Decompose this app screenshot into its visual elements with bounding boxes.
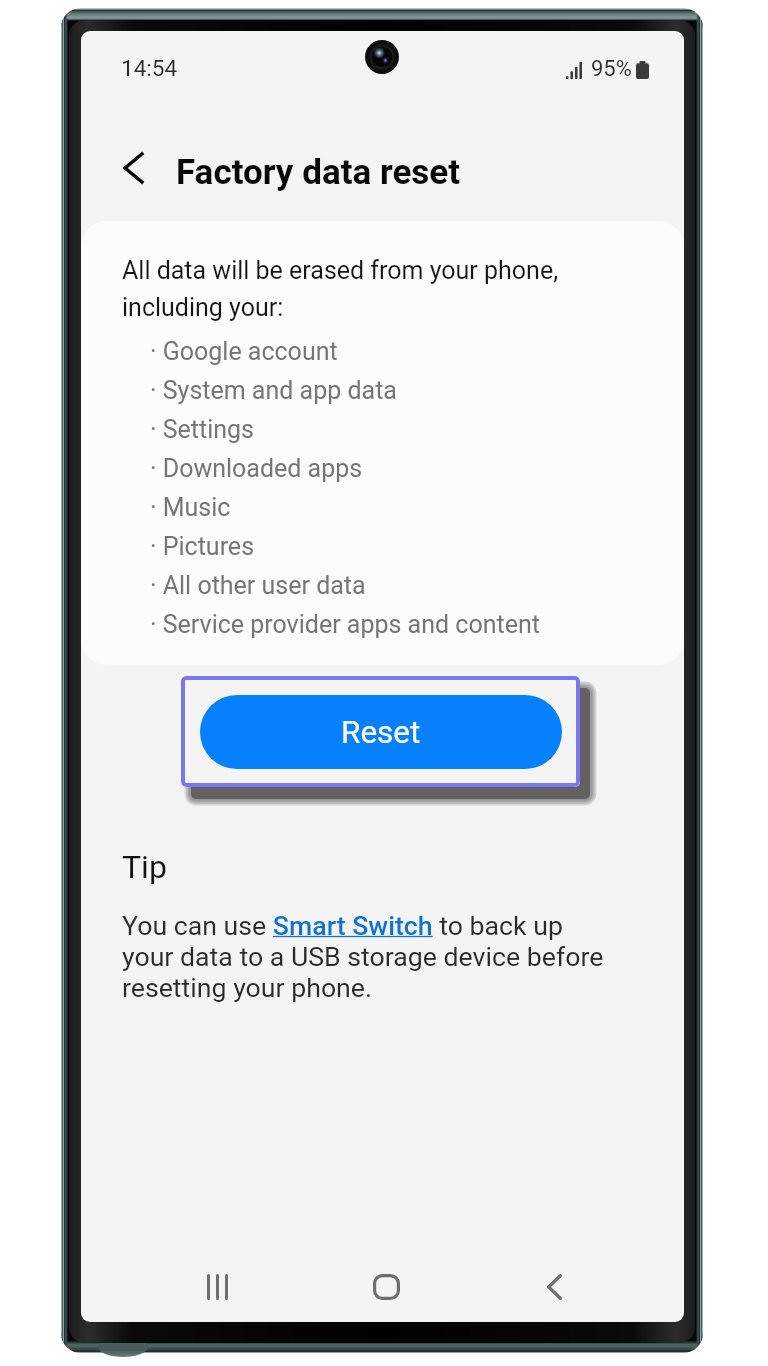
staticText: All data will be erased from your phone,… xyxy=(122,256,559,322)
staticText: · Service provider apps and content xyxy=(150,610,540,639)
button[interactable]: Reset xyxy=(200,695,562,769)
button[interactable]: Home xyxy=(302,1252,470,1322)
staticText: · All other user data xyxy=(150,571,366,600)
staticText: Factory data reset xyxy=(176,152,461,193)
staticText: · Downloaded apps xyxy=(150,454,363,483)
button[interactable]: Back xyxy=(470,1252,638,1322)
staticText: · Pictures xyxy=(150,532,255,561)
staticText: You can use Smart Switch to back up your… xyxy=(122,910,604,1003)
staticText: · System and app data xyxy=(150,376,397,405)
staticText: Reset xyxy=(341,714,421,751)
staticText: · Music xyxy=(150,493,231,522)
staticText: · Google account xyxy=(150,337,338,366)
staticText: Tip xyxy=(122,848,167,886)
staticText: 14:54 xyxy=(121,55,178,81)
button[interactable]: Recent apps xyxy=(133,1252,302,1322)
button[interactable]: Back xyxy=(107,142,159,194)
staticText: · Settings xyxy=(150,415,255,444)
staticText: 95% xyxy=(591,56,632,82)
